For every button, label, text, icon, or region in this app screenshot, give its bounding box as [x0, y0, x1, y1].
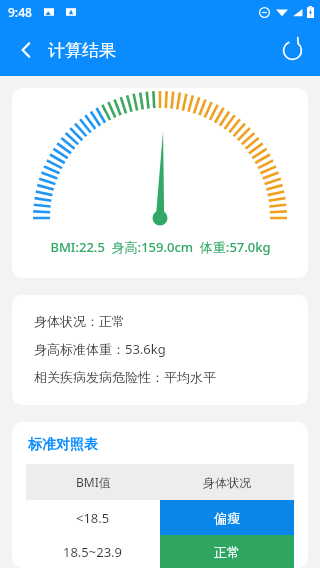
staticText: BMI:22.5 身高:159.0cm 体重:57.0kg	[50, 238, 271, 256]
staticText: <18.5	[76, 509, 110, 527]
staticText: 身体状况：正常	[34, 313, 125, 329]
button[interactable]: Refresh	[272, 30, 312, 70]
staticText: 计算结果	[48, 40, 116, 61]
staticText: 18.5~23.9	[63, 543, 123, 561]
button[interactable]: Back	[6, 30, 46, 70]
button[interactable]: <18.5	[26, 500, 294, 535]
staticText: 标准对照表	[28, 436, 98, 454]
button[interactable]: 18.5~23.9	[26, 535, 294, 568]
staticText: 身高标准体重：53.6kg	[34, 340, 166, 358]
staticText: BMI值	[76, 474, 111, 490]
staticText: 身体状况	[203, 475, 251, 490]
staticText: 偏瘦	[214, 510, 240, 526]
staticText: 相关疾病发病危险性：平均水平	[34, 369, 216, 385]
staticText: 正常	[214, 544, 240, 560]
staticText: 9:48	[8, 4, 32, 20]
